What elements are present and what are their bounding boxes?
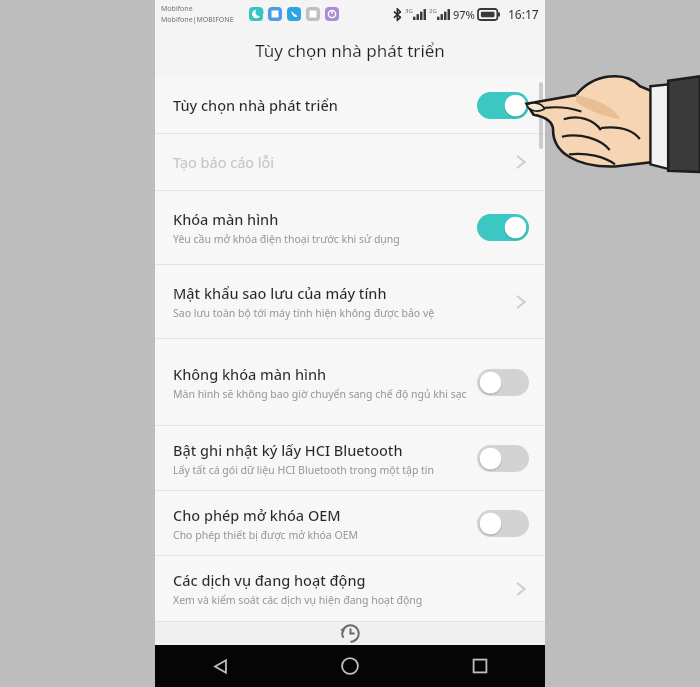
button[interactable]: Restore defaults <box>155 622 545 645</box>
staticText: Tùy chọn nhà phát triển <box>173 95 338 115</box>
button[interactable]: Các dịch vụ đang hoạt động <box>155 556 545 621</box>
staticText: Các dịch vụ đang hoạt động <box>173 570 366 590</box>
staticText: Bật ghi nhật ký lấy HCI Bluetooth <box>173 440 403 460</box>
button[interactable]: Recents <box>415 645 545 687</box>
button[interactable]: Toggle off <box>477 510 529 537</box>
staticText: Tạo báo cáo lỗi <box>173 152 275 172</box>
staticText: 3G <box>405 7 413 15</box>
button[interactable]: Toggle off <box>477 445 529 472</box>
staticText: Khóa màn hình <box>173 209 279 229</box>
button[interactable]: Tùy chọn nhà phát triển <box>155 77 545 133</box>
button[interactable]: Back <box>155 645 285 687</box>
other: Restore defaults <box>339 622 362 645</box>
staticText: Cho phép thiết bị được mở khóa OEM <box>173 528 359 542</box>
staticText: Mật khẩu sao lưu của máy tính <box>173 283 387 303</box>
staticText: Lấy tất cá gói dữ liệu HCI Bluetooth tro… <box>173 463 435 477</box>
staticText: Cho phép mở khóa OEM <box>173 505 341 525</box>
staticText: Tùy chọn nhà phát triển <box>255 39 445 62</box>
staticText: Xem và kiểm soát các dịch vụ hiện đang h… <box>173 593 423 607</box>
button[interactable]: Khóa màn hình <box>155 191 545 264</box>
button[interactable]: Bật ghi nhật ký lấy HCI Bluetooth <box>155 426 545 490</box>
button[interactable]: Toggle on <box>477 92 529 119</box>
button[interactable]: Cho phép mở khóa OEM <box>155 491 545 555</box>
button[interactable]: Home <box>285 645 415 687</box>
staticText: Không khóa màn hình <box>173 364 327 384</box>
button[interactable]: Toggle off <box>477 369 529 396</box>
staticText: 2G <box>429 7 437 15</box>
button[interactable]: Tạo báo cáo lỗi <box>155 134 545 190</box>
staticText: Màn hình sẽ không bao giờ chuyển sang ch… <box>173 387 467 401</box>
staticText: Mobifone <box>161 4 193 14</box>
staticText: 97% <box>453 7 475 22</box>
button[interactable]: Không khóa màn hình <box>155 339 545 425</box>
staticText: Sao lưu toàn bộ tới máy tính hiện không … <box>173 306 435 320</box>
staticText: 16:17 <box>508 6 539 22</box>
button[interactable]: Mật khẩu sao lưu của máy tính <box>155 265 545 338</box>
staticText: Yêu cầu mở khóa điện thoại trước khi sử … <box>173 232 400 246</box>
staticText: Mobifone|MOBIFONE <box>161 15 234 25</box>
button[interactable]: Toggle on <box>477 214 529 241</box>
